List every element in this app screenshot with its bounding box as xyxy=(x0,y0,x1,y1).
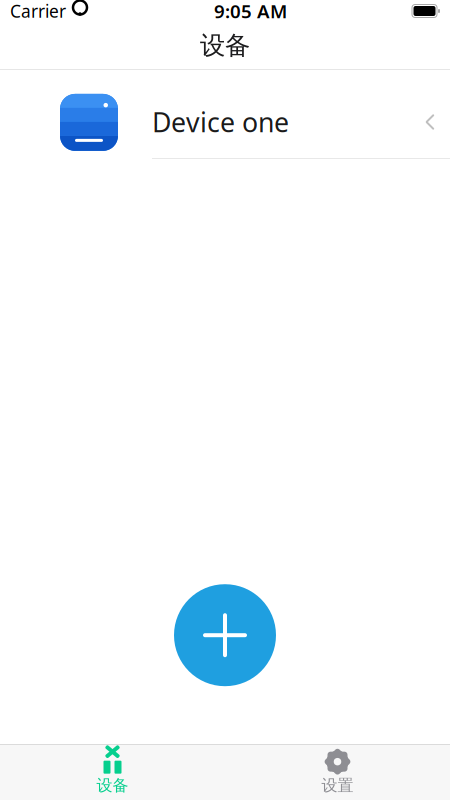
staticText: Carrier xyxy=(10,0,66,22)
staticText: 设备 xyxy=(200,30,250,61)
staticText: 设置 xyxy=(321,776,353,795)
button[interactable]: 设备 xyxy=(0,745,225,800)
button[interactable]: 设置 xyxy=(225,745,450,800)
staticText: 设备 xyxy=(96,776,128,795)
staticText: 9:05 AM xyxy=(214,0,287,23)
button[interactable]: Add device xyxy=(174,584,276,686)
button[interactable]: Device one xyxy=(0,70,450,159)
staticText: Device one xyxy=(152,104,289,140)
